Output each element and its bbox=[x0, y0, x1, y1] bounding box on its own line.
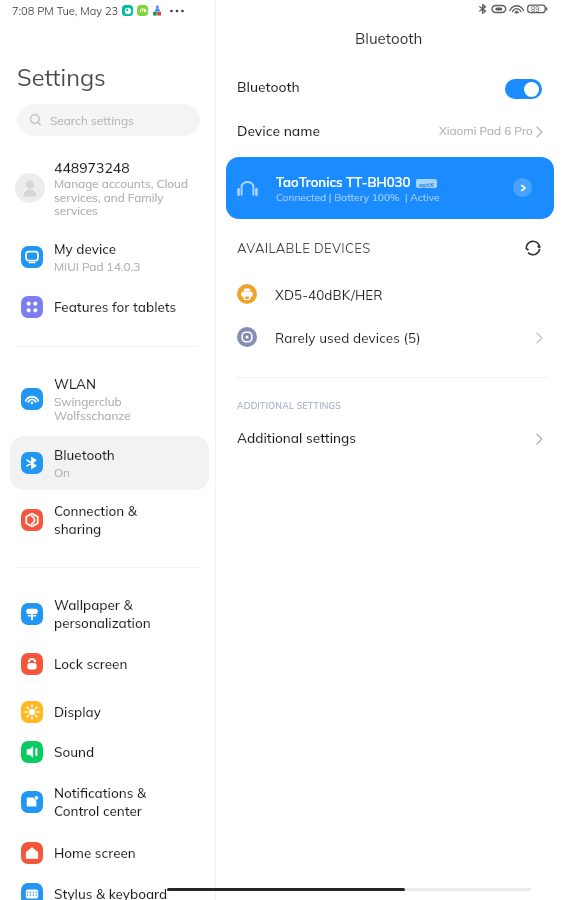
staticText: aptX bbox=[419, 180, 434, 188]
staticText: Bluetooth bbox=[237, 78, 300, 95]
button[interactable]: Sound bbox=[10, 725, 209, 779]
staticText: Settings bbox=[17, 62, 106, 91]
staticText: Lock screen bbox=[54, 656, 128, 673]
staticText: TaoTronics TT-BH030 bbox=[276, 174, 411, 191]
button[interactable]: Notifications & Control center bbox=[10, 775, 209, 829]
staticText: My device bbox=[54, 241, 117, 258]
button[interactable]: Bluetooth bbox=[216, 69, 563, 109]
staticText: Stylus & keyboard bbox=[54, 886, 168, 900]
staticText: Sound bbox=[54, 744, 95, 761]
button[interactable]: Device details bbox=[513, 178, 532, 197]
button[interactable]: Search settings bbox=[17, 104, 200, 136]
staticText: AVAILABLE DEVICES bbox=[237, 240, 371, 256]
staticText: Features for tablets bbox=[54, 299, 177, 316]
button[interactable]: Bluetooth on bbox=[505, 79, 542, 99]
button[interactable]: 448973248 bbox=[10, 156, 209, 220]
button[interactable]: Additional settings bbox=[216, 424, 563, 460]
staticText: Notifications & Control center bbox=[54, 785, 146, 819]
button[interactable]: Lock screen bbox=[10, 637, 209, 691]
staticText: Home screen bbox=[54, 845, 136, 862]
staticText: Wallpaper & personalization bbox=[54, 597, 151, 631]
button[interactable]: Home screen bbox=[10, 826, 209, 880]
staticText: 89 bbox=[531, 5, 540, 14]
staticText: Search settings bbox=[50, 113, 134, 128]
staticText: XD5-40dBK/HER bbox=[275, 287, 383, 304]
staticText: 448973248 bbox=[54, 159, 130, 177]
staticText: MIUI Pad 14.0.3 bbox=[54, 259, 141, 274]
button[interactable]: WLAN bbox=[10, 372, 209, 426]
staticText: On bbox=[54, 465, 71, 480]
button[interactable]: Features for tablets bbox=[10, 280, 209, 334]
staticText: WLAN bbox=[54, 376, 97, 393]
button[interactable]: Bluetooth bbox=[10, 436, 209, 490]
staticText: Device name bbox=[237, 122, 321, 139]
button[interactable]: Rarely used devices (5) bbox=[216, 317, 563, 357]
staticText: ADDITIONAL SETTINGS bbox=[237, 400, 342, 411]
staticText: Bluetooth bbox=[54, 447, 115, 464]
staticText: Swingerclub Wolfsschanze bbox=[54, 394, 131, 423]
button[interactable]: My device bbox=[10, 230, 209, 284]
staticText: 7:08 PM Tue, May 23 bbox=[12, 4, 119, 18]
button[interactable]: Device name bbox=[216, 113, 563, 153]
staticText: Manage accounts, Cloud services, and Fam… bbox=[54, 176, 188, 218]
button[interactable]: Stylus & keyboard bbox=[10, 867, 209, 900]
button[interactable]: Refresh bbox=[522, 237, 544, 259]
staticText: Rarely used devices (5) bbox=[275, 330, 421, 347]
staticText: Additional settings bbox=[237, 429, 357, 446]
staticText: Bluetooth bbox=[355, 29, 423, 48]
button[interactable]: Connection & sharing bbox=[10, 493, 209, 547]
staticText: Display bbox=[54, 704, 101, 721]
staticText: Xiaomi Pad 6 Pro bbox=[439, 123, 533, 138]
button[interactable]: XD5-40dBK/HER bbox=[216, 274, 563, 314]
staticText: Connection & sharing bbox=[54, 503, 137, 537]
button[interactable]: Wallpaper & personalization bbox=[10, 587, 209, 641]
button[interactable]: TaoTronics TT-BH030 bbox=[226, 157, 554, 219]
button[interactable]: Display bbox=[10, 685, 209, 739]
staticText: Connected | Battery 100% | Active bbox=[276, 191, 440, 204]
